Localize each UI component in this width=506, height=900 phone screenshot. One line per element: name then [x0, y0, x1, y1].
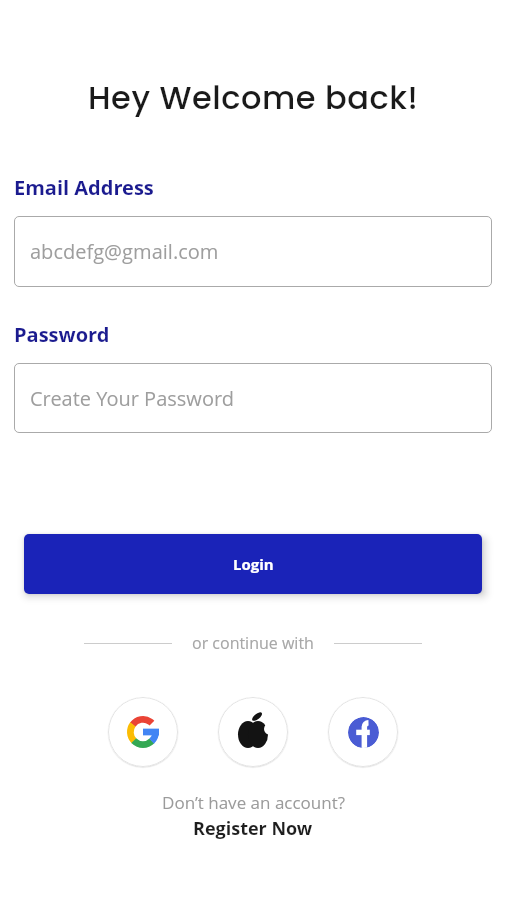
button[interactable]: [218, 697, 288, 767]
staticText: or continue with: [192, 632, 314, 654]
button[interactable]: [108, 697, 178, 767]
button[interactable]: Login: [24, 534, 482, 594]
staticText: Login: [233, 554, 274, 574]
staticText: Email Address: [14, 174, 154, 201]
staticText: Password: [14, 321, 110, 348]
button[interactable]: [328, 697, 398, 767]
staticText: Create Your Password: [30, 385, 235, 412]
staticText: abcdefg@gmail.com: [30, 238, 219, 265]
staticText: Hey Welcome back!: [88, 75, 419, 120]
button[interactable]: Register Now: [193, 816, 313, 841]
button[interactable]: abcdefg@gmail.com: [14, 216, 492, 287]
staticText: Don’t have an account?: [162, 791, 345, 814]
button[interactable]: Create Your Password: [14, 363, 492, 433]
